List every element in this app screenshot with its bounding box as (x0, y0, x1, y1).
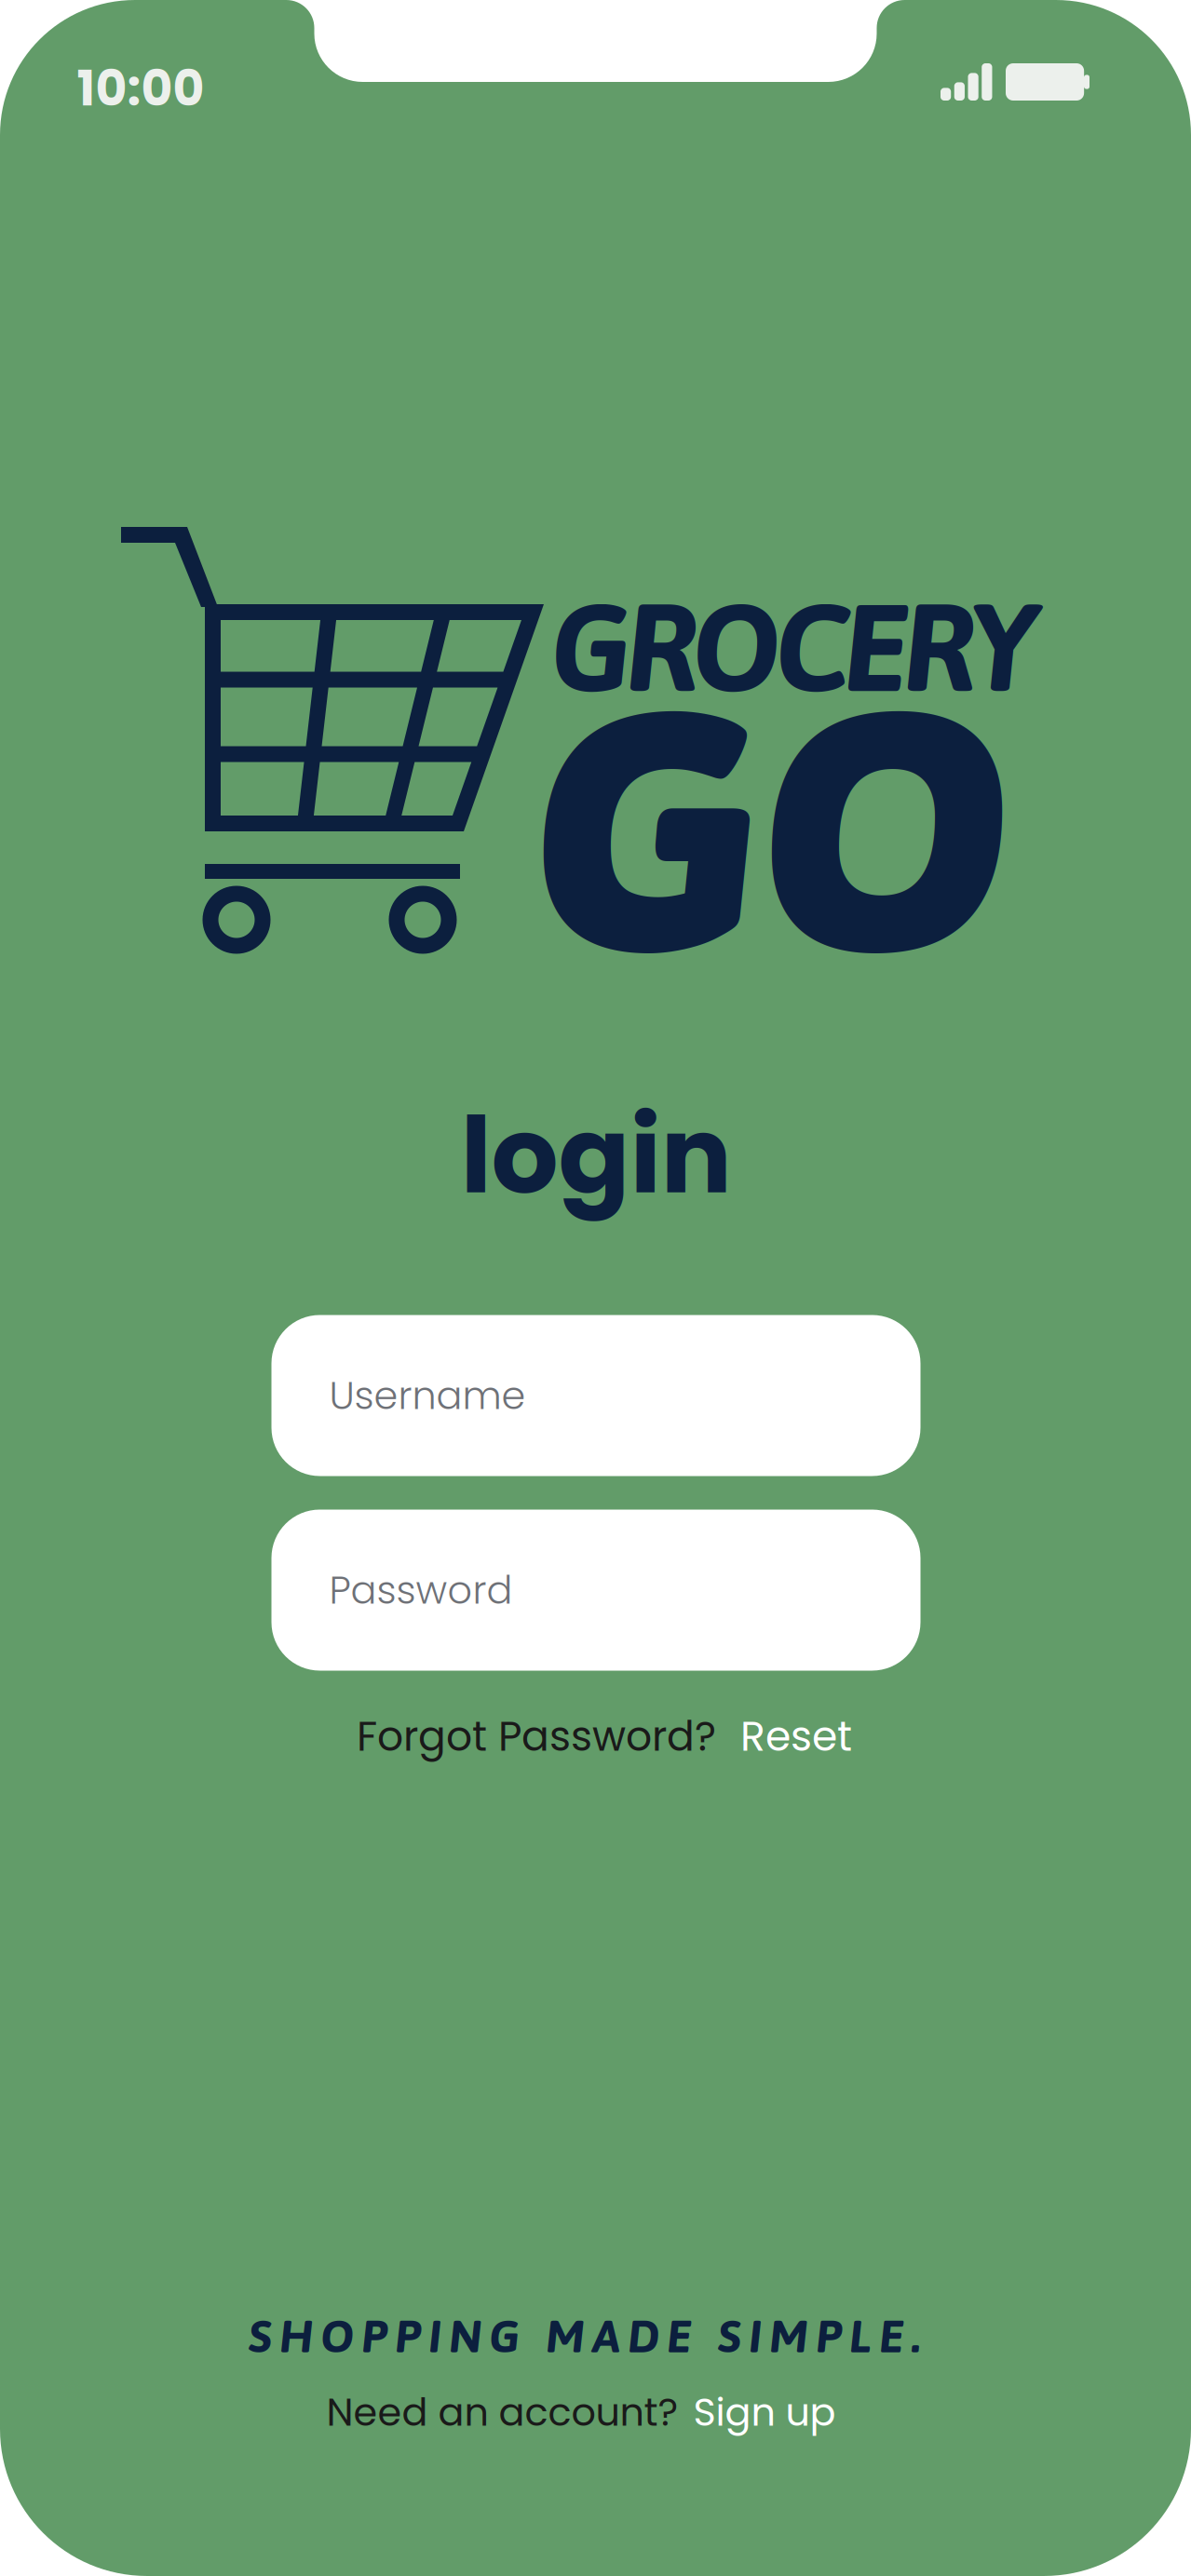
button[interactable]: Sign up (693, 2385, 836, 2439)
staticText: Sign up (693, 2385, 836, 2439)
staticText: Forgot Password? (357, 1708, 716, 1765)
staticText: Username (329, 1369, 526, 1423)
button[interactable]: Reset (740, 1708, 852, 1765)
staticText: GROCERY (550, 577, 1037, 717)
button[interactable]: Password (271, 1510, 920, 1671)
staticText: Reset (740, 1708, 852, 1765)
staticText: SHOPPING MADE SIMPLE. (249, 2309, 921, 2362)
staticText: Password (329, 1563, 513, 1617)
staticText: Need an account? (326, 2385, 678, 2439)
staticText: GO (533, 635, 1007, 1022)
button[interactable]: Username (271, 1315, 920, 1476)
staticText: 10:00 (77, 55, 204, 122)
staticText: login (460, 1082, 731, 1229)
